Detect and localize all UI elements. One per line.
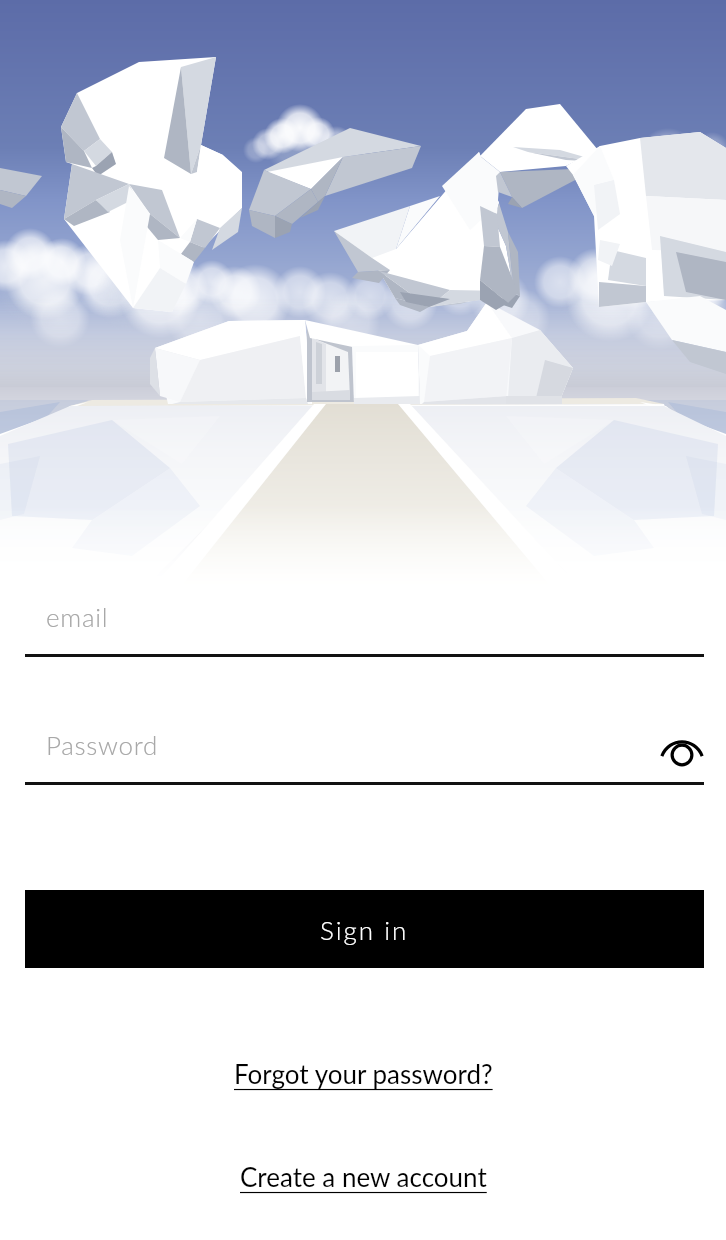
button[interactable]: Create a new account: [240, 1161, 487, 1192]
button[interactable]: Show password: [661, 730, 703, 772]
staticText: Forgot your password?: [234, 1058, 493, 1089]
staticText: email: [46, 601, 109, 632]
button[interactable]: Sign in: [25, 890, 704, 968]
button[interactable]: Forgot your password?: [234, 1058, 493, 1089]
staticText: Create a new account: [240, 1161, 487, 1192]
staticText: Sign in: [320, 914, 409, 945]
staticText: Password: [46, 729, 158, 760]
